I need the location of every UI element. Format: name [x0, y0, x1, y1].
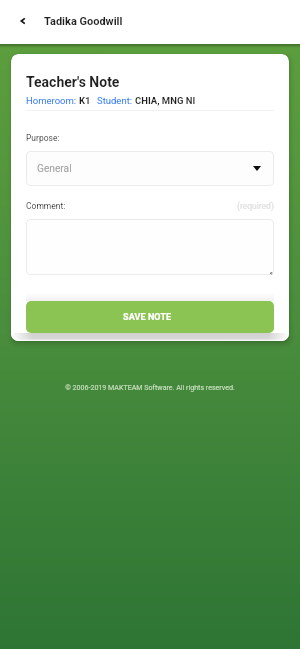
staticText: Homeroom: [26, 95, 79, 106]
button[interactable]: Comment field [26, 219, 274, 275]
button[interactable]: SAVE NOTE [26, 301, 274, 333]
staticText: General [37, 163, 72, 175]
staticText: (required) [237, 201, 274, 211]
staticText: Tadika Goodwill [44, 15, 123, 28]
staticText: Purpose: [26, 133, 60, 143]
staticText: © 2006-2019 MAKTEAM Software. All rights… [0, 383, 300, 391]
staticText: Student: [97, 95, 135, 106]
staticText: SAVE NOTE [123, 312, 172, 323]
staticText: Teacher's Note [26, 74, 120, 90]
button[interactable]: Back [0, 0, 44, 44]
staticText: K1 [79, 95, 91, 106]
staticText: CHIA, MNG NI [135, 95, 196, 106]
staticText: Comment: [26, 201, 66, 211]
button[interactable]: Purpose dropdown [26, 151, 274, 186]
